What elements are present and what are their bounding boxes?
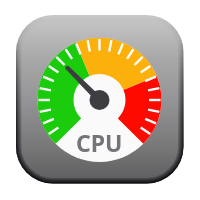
button[interactable]: CPU monitor <box>0 0 200 200</box>
